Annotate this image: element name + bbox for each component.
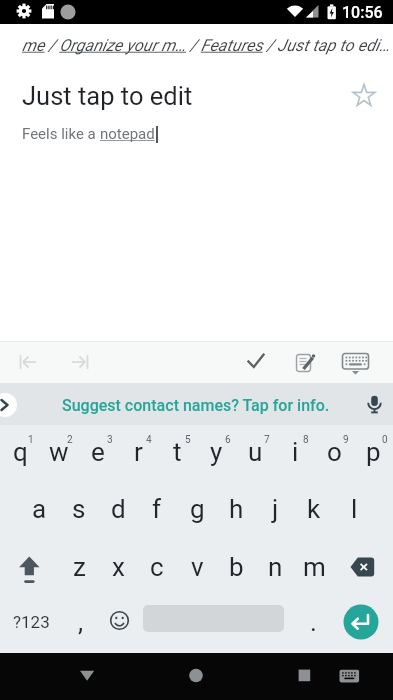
staticText: e — [91, 437, 105, 467]
staticText: , — [78, 607, 84, 637]
staticText: h — [229, 494, 244, 524]
staticText: u — [248, 437, 263, 467]
staticText: 3 — [107, 434, 113, 446]
staticText: o — [327, 437, 342, 467]
staticText: g — [190, 494, 205, 524]
staticText: w — [49, 437, 69, 467]
staticText: 7 — [264, 434, 270, 446]
staticText: p — [366, 437, 381, 467]
staticText: d — [111, 494, 126, 524]
staticText: i — [292, 437, 299, 467]
staticText: . — [310, 607, 317, 637]
staticText: Just tap to edit — [22, 81, 193, 111]
staticText: 4 — [146, 434, 152, 446]
staticText: c — [150, 552, 164, 582]
staticText: r — [134, 437, 143, 467]
staticText: 6 — [225, 434, 231, 446]
staticText: 8 — [303, 434, 309, 446]
staticText: 9 — [343, 434, 349, 446]
staticText: me / Organize your m… / Features / Just … — [22, 36, 390, 55]
staticText: m — [303, 552, 326, 582]
staticText: notepad — [100, 125, 155, 143]
staticText: b — [229, 552, 244, 582]
staticText: l — [351, 494, 358, 524]
staticText: n — [268, 552, 283, 582]
staticText: 5 — [185, 434, 191, 446]
staticText: y — [210, 437, 223, 467]
staticText: Feels like a — [22, 125, 100, 143]
staticText: k — [307, 494, 321, 524]
staticText: j — [272, 494, 279, 524]
staticText: v — [191, 552, 204, 582]
staticText: ?123 — [13, 612, 50, 632]
staticText: x — [112, 552, 125, 582]
staticText: 1 — [28, 434, 34, 446]
staticText: a — [32, 494, 47, 524]
staticText: f — [152, 494, 162, 524]
staticText: 0 — [382, 434, 388, 446]
staticText: z — [73, 552, 86, 582]
staticText: q — [13, 437, 28, 467]
staticText: 10:56 — [342, 3, 383, 22]
staticText: t — [173, 437, 182, 467]
staticText: 2 — [67, 434, 73, 446]
staticText: s — [72, 494, 86, 524]
staticText: Suggest contact names? Tap for info. — [62, 396, 330, 415]
